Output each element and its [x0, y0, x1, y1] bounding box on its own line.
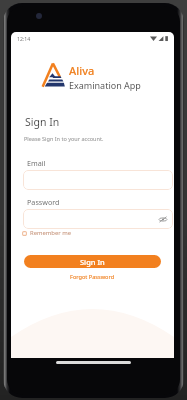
other: Show password [159, 216, 167, 223]
staticText: Email [27, 158, 46, 168]
staticText: Aliva [69, 63, 95, 78]
button[interactable]: Sign In [24, 255, 161, 268]
staticText: Sign In [25, 115, 60, 129]
staticText: Examination App [69, 79, 141, 91]
button[interactable] [23, 170, 173, 190]
staticText: 12:14 [17, 35, 31, 42]
staticText: Sign In [80, 257, 105, 267]
button[interactable]: Forgot Password [67, 272, 118, 282]
staticText: Forgot Password [70, 273, 115, 281]
button[interactable]: Show password [23, 209, 173, 229]
staticText: Remember me [30, 229, 72, 237]
staticText: Password [27, 197, 60, 207]
staticText: Please Sign In to your account. [24, 135, 104, 142]
button[interactable]: Remember me [22, 229, 72, 237]
